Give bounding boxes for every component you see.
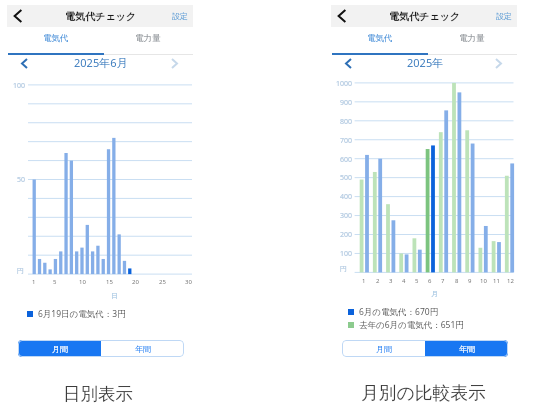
staticText: 2: [376, 277, 380, 285]
staticText: 50: [17, 175, 26, 185]
staticText: 円: [17, 266, 24, 275]
staticText: 日: [111, 291, 118, 300]
staticText: 1000: [336, 79, 353, 89]
staticText: 12: [507, 277, 514, 285]
staticText: 年間: [135, 344, 151, 354]
staticText: 20: [132, 278, 139, 286]
staticText: 700: [340, 136, 353, 146]
staticText: 1: [362, 277, 366, 285]
staticText: 2025年: [407, 55, 444, 70]
button[interactable]: 年間: [425, 340, 508, 357]
staticText: 800: [340, 117, 353, 127]
staticText: 月間: [376, 344, 392, 354]
button[interactable]: Back: [9, 7, 27, 25]
button[interactable]: 月間: [18, 340, 101, 357]
button[interactable]: 年間: [101, 340, 184, 357]
staticText: 電気代: [367, 33, 393, 44]
staticText: 電気代チェック: [65, 10, 136, 23]
staticText: 100: [340, 249, 353, 259]
staticText: 設定: [496, 11, 512, 21]
staticText: 10: [79, 278, 86, 286]
staticText: 400: [340, 192, 353, 202]
staticText: 月別の比較表示: [361, 382, 486, 404]
staticText: 5: [415, 277, 419, 285]
staticText: 電力量: [135, 33, 161, 44]
button[interactable]: Back: [333, 7, 351, 25]
staticText: 7: [441, 277, 445, 285]
staticText: 5: [53, 278, 57, 286]
staticText: 1: [32, 278, 36, 286]
staticText: 円: [340, 264, 347, 273]
button[interactable]: 設定: [496, 11, 512, 21]
staticText: 900: [340, 98, 353, 108]
staticText: 3: [389, 277, 393, 285]
staticText: 電力量: [459, 33, 485, 44]
button[interactable]: Previous month: [338, 53, 358, 73]
staticText: 4: [402, 277, 406, 285]
staticText: 500: [340, 173, 353, 183]
staticText: 電気代チェック: [389, 10, 460, 23]
button[interactable]: 電力量: [428, 27, 516, 50]
button[interactable]: 電気代: [332, 27, 428, 50]
staticText: 15: [106, 278, 113, 286]
staticText: 8: [455, 277, 459, 285]
button[interactable]: 電力量: [104, 27, 192, 50]
button[interactable]: Previous month: [14, 53, 34, 73]
staticText: 25: [159, 278, 166, 286]
staticText: 9: [468, 277, 472, 285]
staticText: 30: [185, 278, 192, 286]
button[interactable]: 電気代: [8, 27, 104, 50]
staticText: 11: [493, 277, 500, 285]
staticText: 日別表示: [63, 383, 133, 405]
staticText: 200: [340, 230, 353, 240]
button[interactable]: Next month: [488, 53, 508, 73]
button[interactable]: 設定: [172, 11, 188, 21]
staticText: 6: [428, 277, 432, 285]
staticText: 100: [13, 81, 26, 91]
staticText: 6月の電気代：670円: [359, 306, 439, 318]
staticText: 設定: [172, 11, 188, 21]
staticText: 電気代: [43, 33, 69, 44]
staticText: 300: [340, 211, 353, 221]
staticText: 10: [480, 277, 487, 285]
button[interactable]: 月間: [342, 340, 425, 357]
button[interactable]: Next month: [164, 53, 184, 73]
staticText: 月間: [52, 344, 68, 354]
staticText: 去年の6月の電気代：651円: [359, 319, 464, 331]
staticText: 600: [340, 155, 353, 165]
staticText: 6月19日の電気代：3円: [38, 308, 126, 320]
staticText: 年間: [459, 344, 475, 354]
staticText: 2025年6月: [74, 55, 128, 70]
staticText: 月: [431, 289, 438, 298]
